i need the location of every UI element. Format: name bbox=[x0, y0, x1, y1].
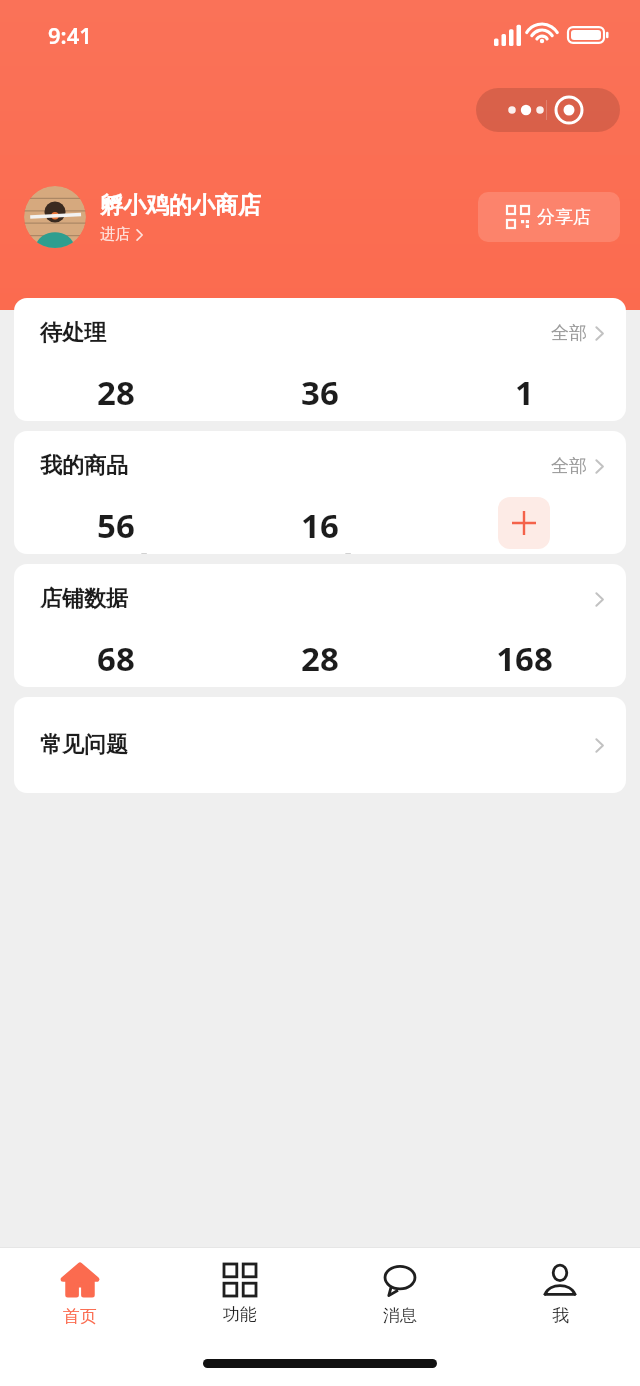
button[interactable]: 进店 bbox=[100, 225, 143, 244]
button[interactable]: 功能 bbox=[160, 1248, 320, 1340]
button[interactable]: 28 bbox=[14, 370, 218, 421]
button[interactable]: 68 bbox=[14, 636, 218, 687]
staticText: 1 bbox=[515, 370, 534, 415]
staticText: 56 bbox=[97, 503, 135, 548]
staticText: 店铺数据 bbox=[40, 585, 128, 613]
button[interactable]: 28 bbox=[218, 636, 422, 687]
staticText: 28 bbox=[301, 636, 339, 681]
button[interactable] bbox=[595, 592, 604, 607]
staticText: 16 bbox=[301, 503, 339, 548]
button[interactable]: 1 bbox=[422, 370, 626, 421]
button[interactable]: Shop avatar bbox=[24, 186, 86, 248]
staticText: 待处理 bbox=[40, 319, 106, 347]
staticText: 消息 bbox=[383, 1305, 417, 1326]
staticText: 我的商品 bbox=[40, 452, 128, 480]
staticText: 分享店 bbox=[537, 206, 591, 229]
staticText: 常见问题 bbox=[40, 731, 128, 759]
staticText: 28 bbox=[97, 370, 135, 415]
staticText: 首页 bbox=[63, 1306, 97, 1327]
button[interactable]: 全部 bbox=[551, 455, 604, 478]
button[interactable]: 我 bbox=[480, 1248, 640, 1340]
button[interactable]: Mini program menu bbox=[476, 88, 620, 132]
staticText: 孵小鸡的小商店 bbox=[100, 191, 261, 220]
button[interactable]: 首页 bbox=[0, 1248, 160, 1340]
staticText: 9:41 bbox=[48, 20, 92, 50]
staticText: 我 bbox=[552, 1305, 569, 1326]
staticText: 68 bbox=[97, 636, 135, 681]
staticText: 全部 bbox=[551, 322, 587, 345]
button[interactable]: 56 bbox=[14, 497, 218, 554]
staticText: 全部 bbox=[551, 455, 587, 478]
staticText: 36 bbox=[301, 370, 339, 415]
staticText: 168 bbox=[496, 636, 553, 681]
button[interactable]: 36 bbox=[218, 370, 422, 421]
staticText: 功能 bbox=[223, 1304, 257, 1325]
button[interactable]: 常见问题 bbox=[40, 697, 604, 793]
button[interactable]: 分享店 bbox=[478, 192, 620, 242]
button[interactable]: 168 bbox=[422, 636, 626, 687]
button[interactable]: 新增商品 bbox=[422, 497, 626, 554]
button[interactable]: 全部 bbox=[551, 322, 604, 345]
button[interactable]: 消息 bbox=[320, 1248, 480, 1340]
button[interactable]: 16 bbox=[218, 497, 422, 554]
staticText: 进店 bbox=[100, 225, 130, 244]
